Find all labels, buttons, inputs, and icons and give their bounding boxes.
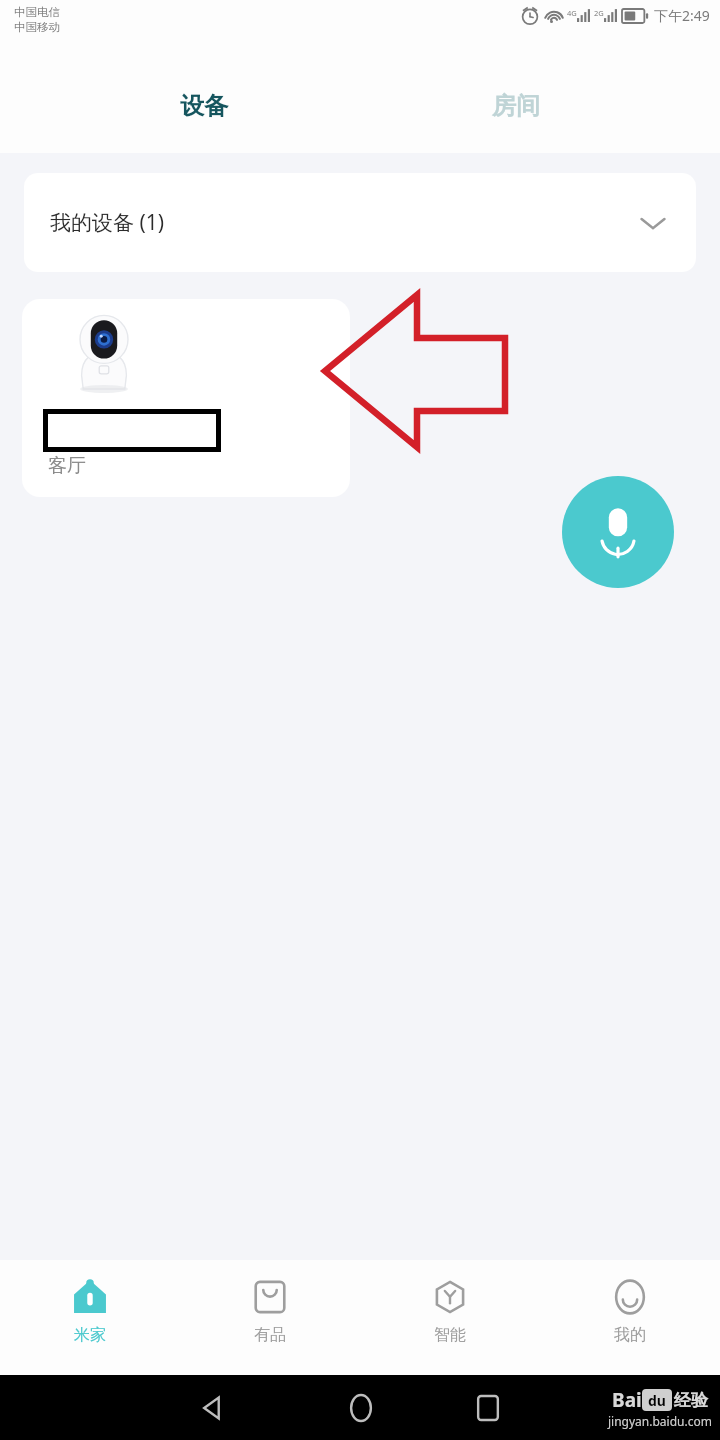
staticText: 中国电信 <box>14 5 60 19</box>
staticText: 我的设备 (1) <box>50 208 165 237</box>
staticText: 房间 <box>492 91 540 121</box>
staticText: 智能 <box>434 1325 466 1345</box>
button[interactable]: 米家 <box>0 1260 180 1375</box>
staticText: 我的 <box>614 1325 646 1345</box>
button[interactable]: Recent apps <box>455 1375 520 1440</box>
button[interactable]: 设备 <box>0 58 360 153</box>
staticText: 米家 <box>74 1325 106 1345</box>
button[interactable]: 房间 <box>360 58 720 153</box>
button[interactable]: Home <box>328 1375 393 1440</box>
other: Annotation arrow <box>0 299 720 499</box>
button[interactable]: 有品 <box>180 1260 360 1375</box>
staticText: 中国移动 <box>14 20 60 34</box>
button[interactable]: 智能 <box>360 1260 540 1375</box>
button[interactable]: 客厅 <box>22 299 350 497</box>
staticText: 设备 <box>180 91 228 121</box>
staticText: 客厅 <box>48 454 86 478</box>
button[interactable]: 我的设备 (1) <box>24 173 696 272</box>
staticText: 有品 <box>254 1325 286 1345</box>
staticText: 4G <box>567 8 577 18</box>
staticText: du <box>648 1391 666 1410</box>
button[interactable]: Back <box>170 1375 256 1440</box>
staticText: 2G <box>594 8 604 18</box>
staticText: 经验 <box>674 1390 708 1411</box>
staticText: Bai <box>612 1387 642 1413</box>
button[interactable]: Voice assistant <box>562 476 674 588</box>
staticText: 下午2:49 <box>654 6 710 25</box>
staticText: jingyan.baidu.com <box>608 1413 712 1429</box>
button[interactable]: 我的 <box>540 1260 720 1375</box>
